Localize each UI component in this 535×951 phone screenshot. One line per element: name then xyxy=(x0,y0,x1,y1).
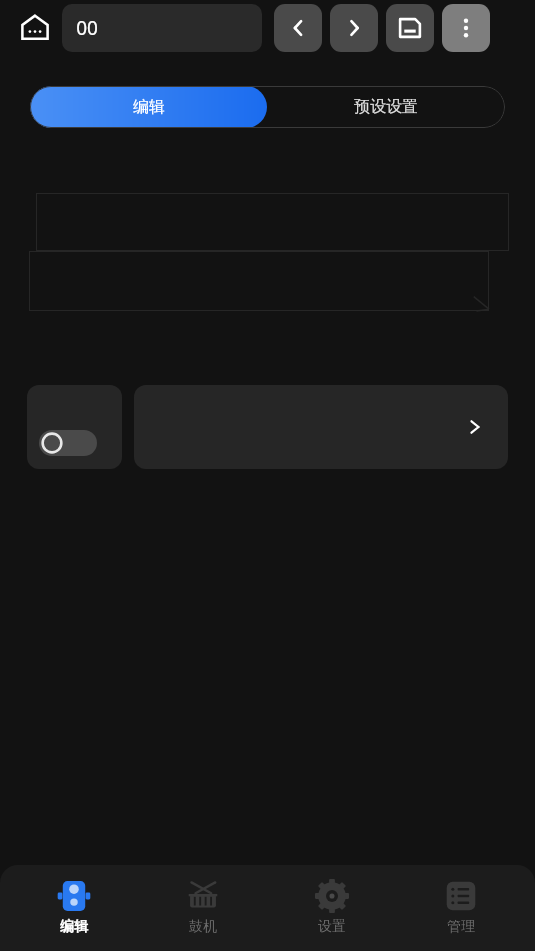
button[interactable]: 鼓机 xyxy=(148,865,258,951)
button[interactable]: 管理 xyxy=(406,865,516,951)
button[interactable]: More options xyxy=(442,4,490,52)
button[interactable]: 编辑 xyxy=(19,865,129,951)
button[interactable]: Home xyxy=(14,7,56,49)
staticText: 编辑 xyxy=(60,918,88,936)
button[interactable]: 设置 xyxy=(277,865,387,951)
staticText: 鼓机 xyxy=(189,918,217,936)
staticText: 预设设置 xyxy=(354,97,418,117)
staticText: 管理 xyxy=(447,918,475,936)
button[interactable]: 编辑 xyxy=(30,86,267,128)
button[interactable]: Next xyxy=(330,4,378,52)
button[interactable]: Toggle xyxy=(27,385,122,469)
button[interactable]: Previous xyxy=(274,4,322,52)
button[interactable]: 00 xyxy=(62,4,262,52)
button[interactable]: Open xyxy=(134,385,508,469)
button[interactable]: 预设设置 xyxy=(267,86,505,128)
staticText: 编辑 xyxy=(133,97,165,117)
staticText: 设置 xyxy=(318,918,346,936)
staticText: 00 xyxy=(76,15,98,41)
button[interactable]: Save xyxy=(386,4,434,52)
